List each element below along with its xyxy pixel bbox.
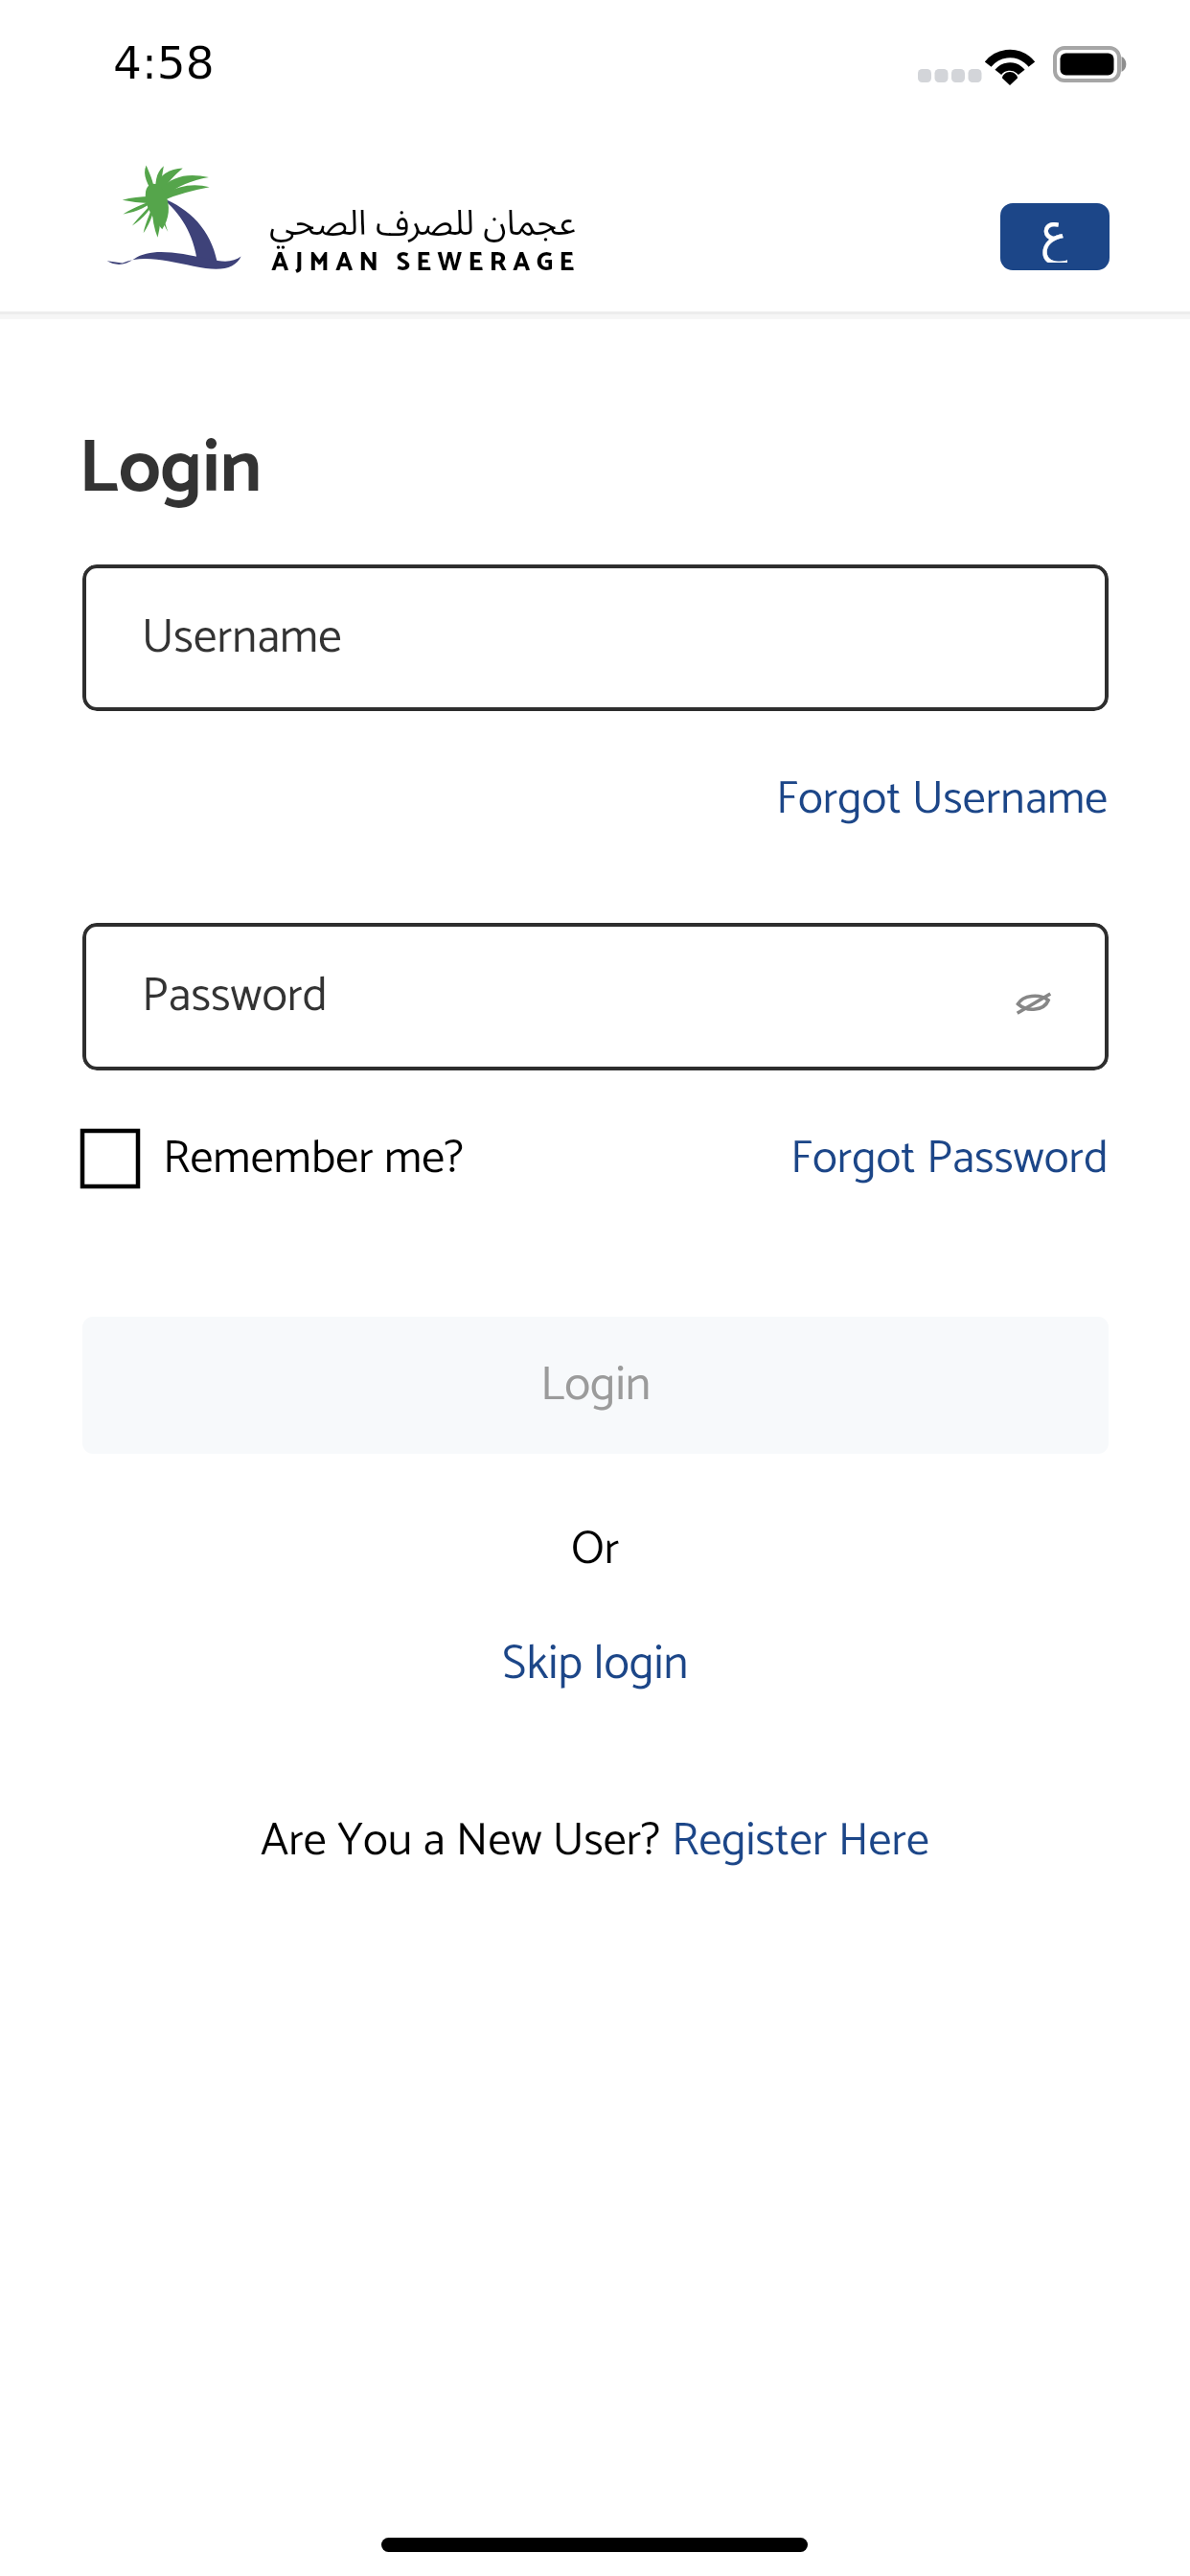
button[interactable]: Show password	[992, 960, 1064, 1033]
button[interactable]: Login	[82, 1317, 1109, 1454]
staticText: Login	[540, 1346, 652, 1425]
staticText: Or	[571, 1512, 620, 1581]
staticText: Password	[142, 958, 328, 1035]
staticText: 4:58	[113, 36, 215, 89]
button[interactable]: Username	[82, 564, 1109, 711]
staticText: Remember me?	[163, 1121, 464, 1197]
staticText: Forgot Password	[790, 1121, 1109, 1197]
staticText: AJMAN SEWERAGE	[271, 241, 581, 284]
staticText: عجمان للصرف الصحي	[269, 188, 577, 261]
button[interactable]: Switch language to Arabic	[1000, 203, 1110, 270]
button[interactable]: Register Here	[672, 1804, 929, 1876]
button[interactable]: Remember me?	[82, 1119, 464, 1198]
staticText: Login	[79, 409, 263, 530]
button[interactable]: Forgot Password	[575, 1119, 1109, 1198]
button[interactable]: Skip login	[502, 1626, 689, 1701]
staticText: Forgot Username	[776, 762, 1109, 834]
staticText: Username	[142, 600, 342, 677]
staticText: ع	[1042, 180, 1067, 263]
staticText: Are You a New User?	[261, 1804, 672, 1876]
button[interactable]: Password	[82, 923, 1109, 1070]
button[interactable]: Forgot Username	[575, 762, 1109, 834]
